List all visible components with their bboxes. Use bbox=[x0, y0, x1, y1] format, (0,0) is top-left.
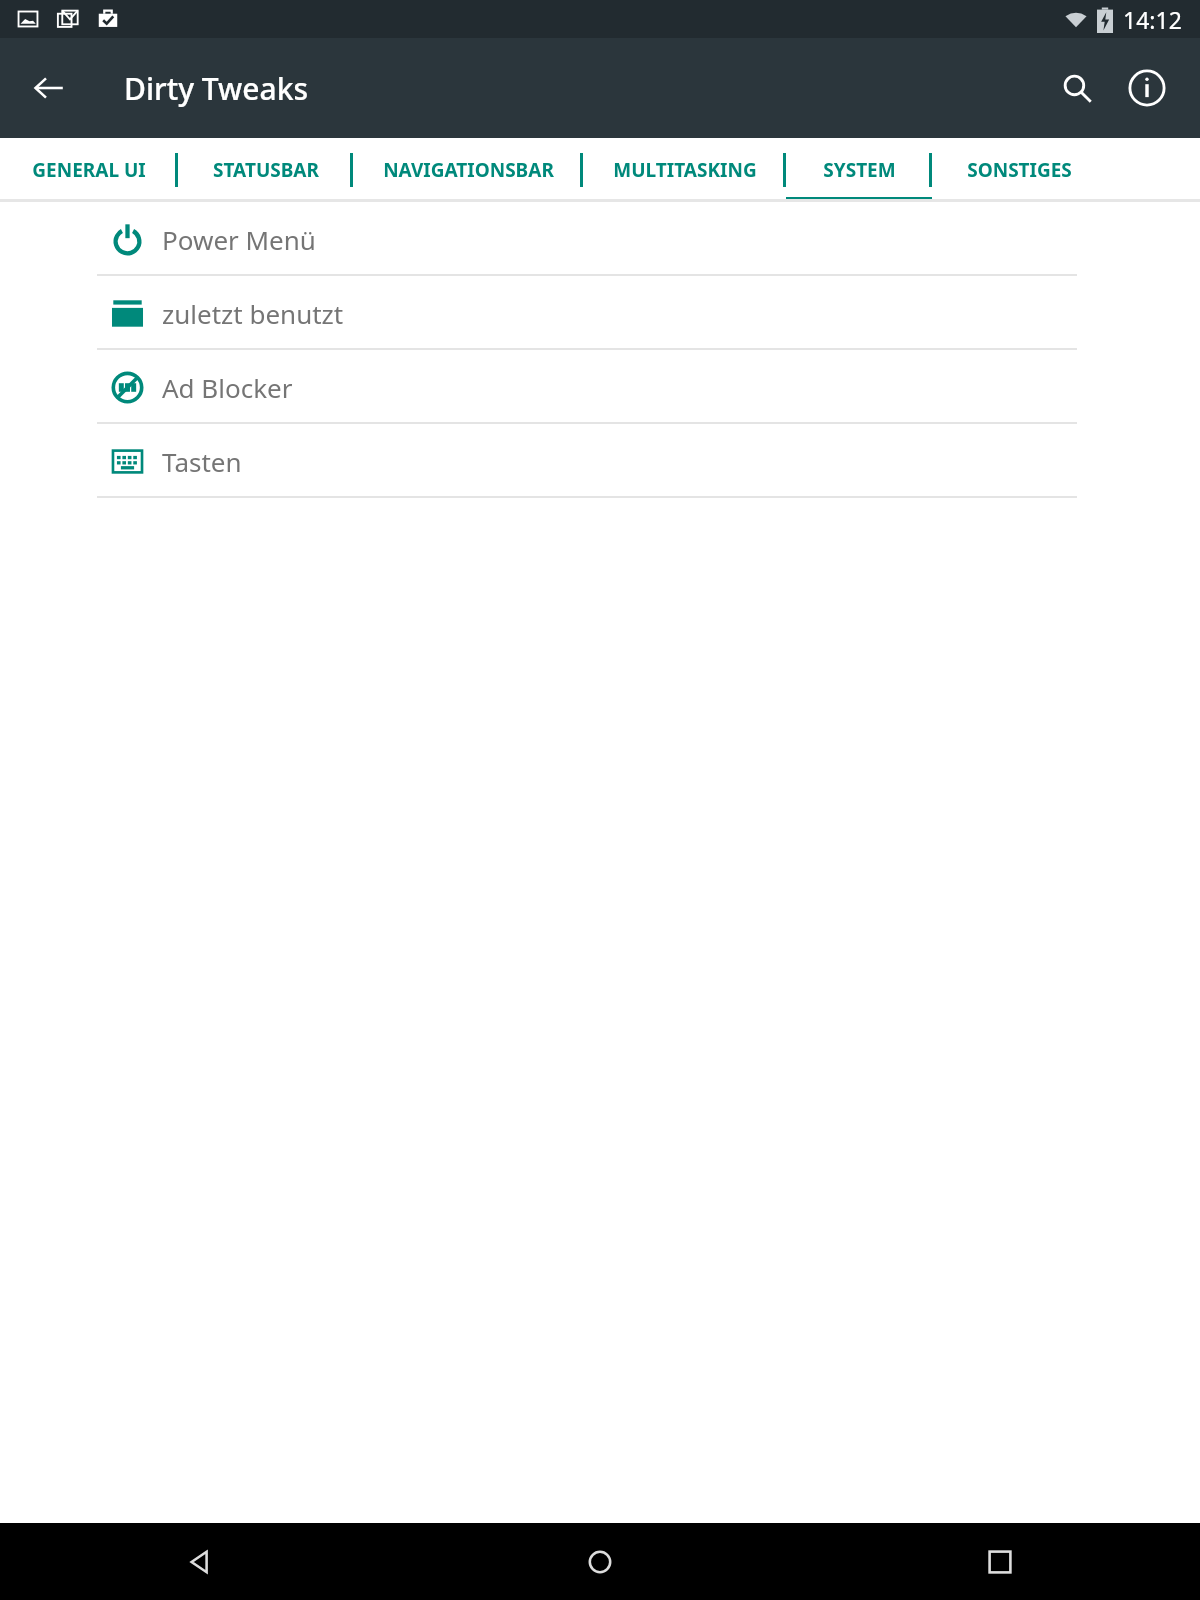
staticText: Dirty Tweaks bbox=[124, 68, 309, 109]
button[interactable]: MULTITASKING bbox=[583, 138, 786, 202]
button[interactable]: Home bbox=[400, 1523, 800, 1600]
staticText: GENERAL UI bbox=[32, 157, 146, 183]
button[interactable]: Back bbox=[0, 1523, 400, 1600]
button[interactable]: SYSTEM bbox=[786, 138, 932, 202]
button[interactable]: Power Menü bbox=[0, 202, 1200, 276]
button[interactable]: Recent apps bbox=[800, 1523, 1200, 1600]
staticText: zuletzt benutzt bbox=[162, 296, 344, 331]
staticText: Tasten bbox=[162, 444, 242, 479]
button[interactable]: SONSTIGES bbox=[932, 138, 1107, 202]
staticText: SYSTEM bbox=[823, 157, 896, 183]
button[interactable]: Search bbox=[1046, 57, 1108, 119]
staticText: 14:12 bbox=[1123, 4, 1182, 35]
staticText: MULTITASKING bbox=[613, 157, 757, 183]
button[interactable]: STATUSBAR bbox=[178, 138, 353, 202]
button[interactable]: zuletzt benutzt bbox=[0, 276, 1200, 350]
button[interactable]: NAVIGATIONSBAR bbox=[353, 138, 583, 202]
button[interactable]: Ad Blocker bbox=[0, 350, 1200, 424]
button[interactable]: Tasten bbox=[0, 424, 1200, 498]
button[interactable]: Back bbox=[18, 57, 80, 119]
staticText: SONSTIGES bbox=[967, 157, 1072, 183]
staticText: Power Menü bbox=[162, 222, 316, 257]
staticText: NAVIGATIONSBAR bbox=[383, 157, 554, 183]
button[interactable]: GENERAL UI bbox=[0, 138, 178, 202]
staticText: STATUSBAR bbox=[213, 157, 319, 183]
button[interactable]: Info bbox=[1116, 57, 1178, 119]
staticText: Ad Blocker bbox=[162, 370, 293, 405]
